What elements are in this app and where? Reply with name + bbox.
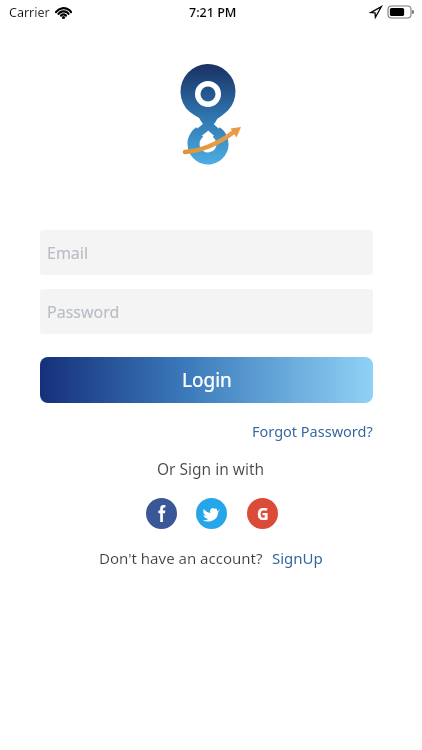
- staticText: Carrier: [9, 4, 50, 21]
- staticText: Forgot Password?: [252, 421, 373, 441]
- button[interactable]: G: [247, 498, 278, 529]
- staticText: Don't have an account?: [99, 548, 263, 568]
- button[interactable]: Forgot Password?: [252, 421, 373, 441]
- button[interactable]: Email: [40, 230, 373, 275]
- staticText: 7:21 PM: [189, 4, 237, 21]
- button[interactable]: Login: [40, 357, 373, 403]
- staticText: G: [257, 503, 269, 525]
- button[interactable]: Password: [40, 289, 373, 334]
- staticText: Password: [47, 301, 120, 323]
- button[interactable]: [196, 498, 227, 529]
- staticText: Or Sign in with: [157, 458, 265, 479]
- button[interactable]: [146, 498, 177, 529]
- staticText: Login: [182, 367, 232, 393]
- staticText: SignUp: [272, 548, 323, 568]
- button[interactable]: SignUp: [272, 548, 323, 568]
- staticText: Email: [47, 242, 89, 264]
